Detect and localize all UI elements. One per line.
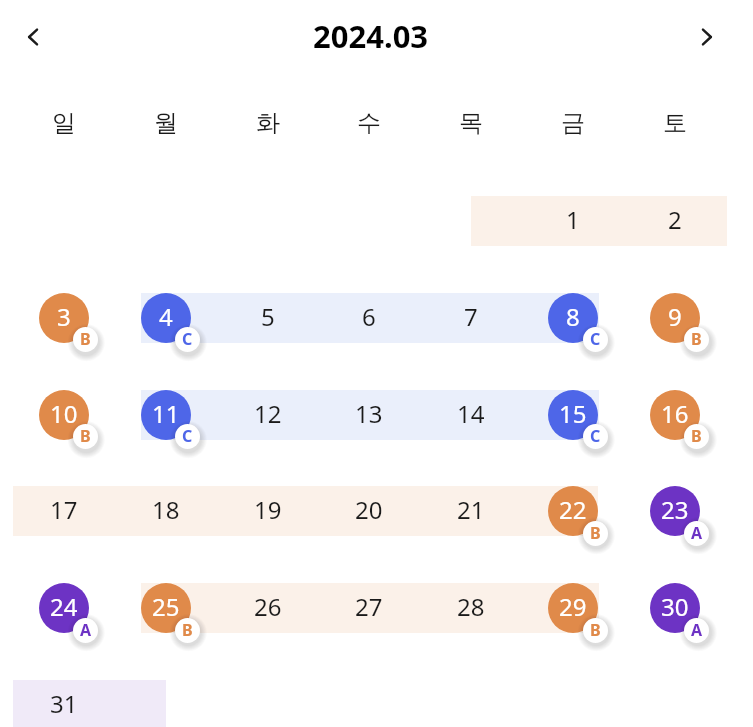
button[interactable]: Previous month [9, 14, 55, 60]
staticText: B [590, 619, 601, 641]
staticText: B [590, 522, 601, 544]
staticText: 화 [256, 108, 280, 138]
staticText: 14 [457, 397, 485, 430]
button[interactable]: 10 [13, 384, 115, 446]
staticText: C [182, 425, 193, 447]
staticText: 8 [566, 300, 580, 333]
button[interactable]: 21 [420, 480, 522, 542]
button[interactable]: 14 [420, 384, 522, 446]
button[interactable]: Next month [685, 14, 731, 60]
staticText: 1 [566, 203, 580, 236]
button[interactable]: 12 [217, 384, 319, 446]
staticText: 27 [355, 590, 383, 623]
staticText: C [590, 328, 601, 350]
staticText: B [80, 328, 91, 350]
button[interactable]: 13 [318, 384, 420, 446]
staticText: A [691, 619, 703, 641]
staticText: 9 [668, 300, 682, 333]
button[interactable]: 1 [522, 190, 624, 252]
button[interactable]: 18 [115, 480, 217, 542]
button[interactable]: 20 [318, 480, 420, 542]
button[interactable]: 30 [624, 577, 726, 639]
button[interactable]: 28 [420, 577, 522, 639]
staticText: 16 [661, 397, 689, 430]
button[interactable]: 5 [217, 287, 319, 349]
staticText: 28 [457, 590, 485, 623]
staticText: B [182, 619, 193, 641]
button[interactable]: 29 [522, 577, 624, 639]
button[interactable]: 8 [522, 287, 624, 349]
staticText: C [590, 425, 601, 447]
staticText: 10 [50, 397, 78, 430]
staticText: 21 [457, 493, 485, 526]
staticText: 15 [559, 397, 587, 430]
button[interactable]: 2 [624, 190, 726, 252]
button[interactable]: 22 [522, 480, 624, 542]
button[interactable]: 4 [115, 287, 217, 349]
staticText: 수 [357, 108, 381, 138]
staticText: 2 [668, 203, 682, 236]
button[interactable]: 3 [13, 287, 115, 349]
button[interactable]: 9 [624, 287, 726, 349]
staticText: 13 [355, 397, 383, 430]
button[interactable]: 31 [13, 674, 115, 727]
staticText: A [80, 619, 92, 641]
staticText: 토 [663, 108, 687, 138]
staticText: 23 [661, 493, 689, 526]
staticText: 4 [159, 300, 173, 333]
button[interactable]: 25 [115, 577, 217, 639]
staticText: 25 [152, 590, 180, 623]
staticText: 목 [459, 108, 483, 138]
button[interactable]: 16 [624, 384, 726, 446]
staticText: 22 [559, 493, 587, 526]
staticText: 3 [57, 300, 71, 333]
staticText: 29 [559, 590, 587, 623]
staticText: 5 [261, 300, 275, 333]
staticText: 17 [50, 493, 78, 526]
staticText: B [691, 425, 702, 447]
staticText: A [691, 522, 703, 544]
staticText: B [80, 425, 91, 447]
staticText: 2024.03 [313, 15, 429, 57]
button[interactable]: 27 [318, 577, 420, 639]
button[interactable]: 17 [13, 480, 115, 542]
staticText: B [691, 328, 702, 350]
staticText: C [182, 328, 193, 350]
staticText: 월 [154, 108, 178, 138]
staticText: 31 [50, 687, 78, 720]
staticText: 금 [561, 108, 585, 138]
button[interactable]: 24 [13, 577, 115, 639]
button[interactable]: 19 [217, 480, 319, 542]
staticText: 7 [464, 300, 478, 333]
button[interactable]: 15 [522, 384, 624, 446]
button[interactable]: 26 [217, 577, 319, 639]
staticText: 6 [362, 300, 376, 333]
button[interactable]: 23 [624, 480, 726, 542]
staticText: 30 [661, 590, 689, 623]
staticText: 26 [254, 590, 282, 623]
button[interactable]: 11 [115, 384, 217, 446]
staticText: 20 [355, 493, 383, 526]
staticText: 18 [152, 493, 180, 526]
staticText: 19 [254, 493, 282, 526]
button[interactable]: 6 [318, 287, 420, 349]
staticText: 일 [52, 108, 76, 138]
staticText: 24 [50, 590, 78, 623]
button[interactable]: 7 [420, 287, 522, 349]
staticText: 12 [254, 397, 282, 430]
staticText: 11 [152, 397, 180, 430]
